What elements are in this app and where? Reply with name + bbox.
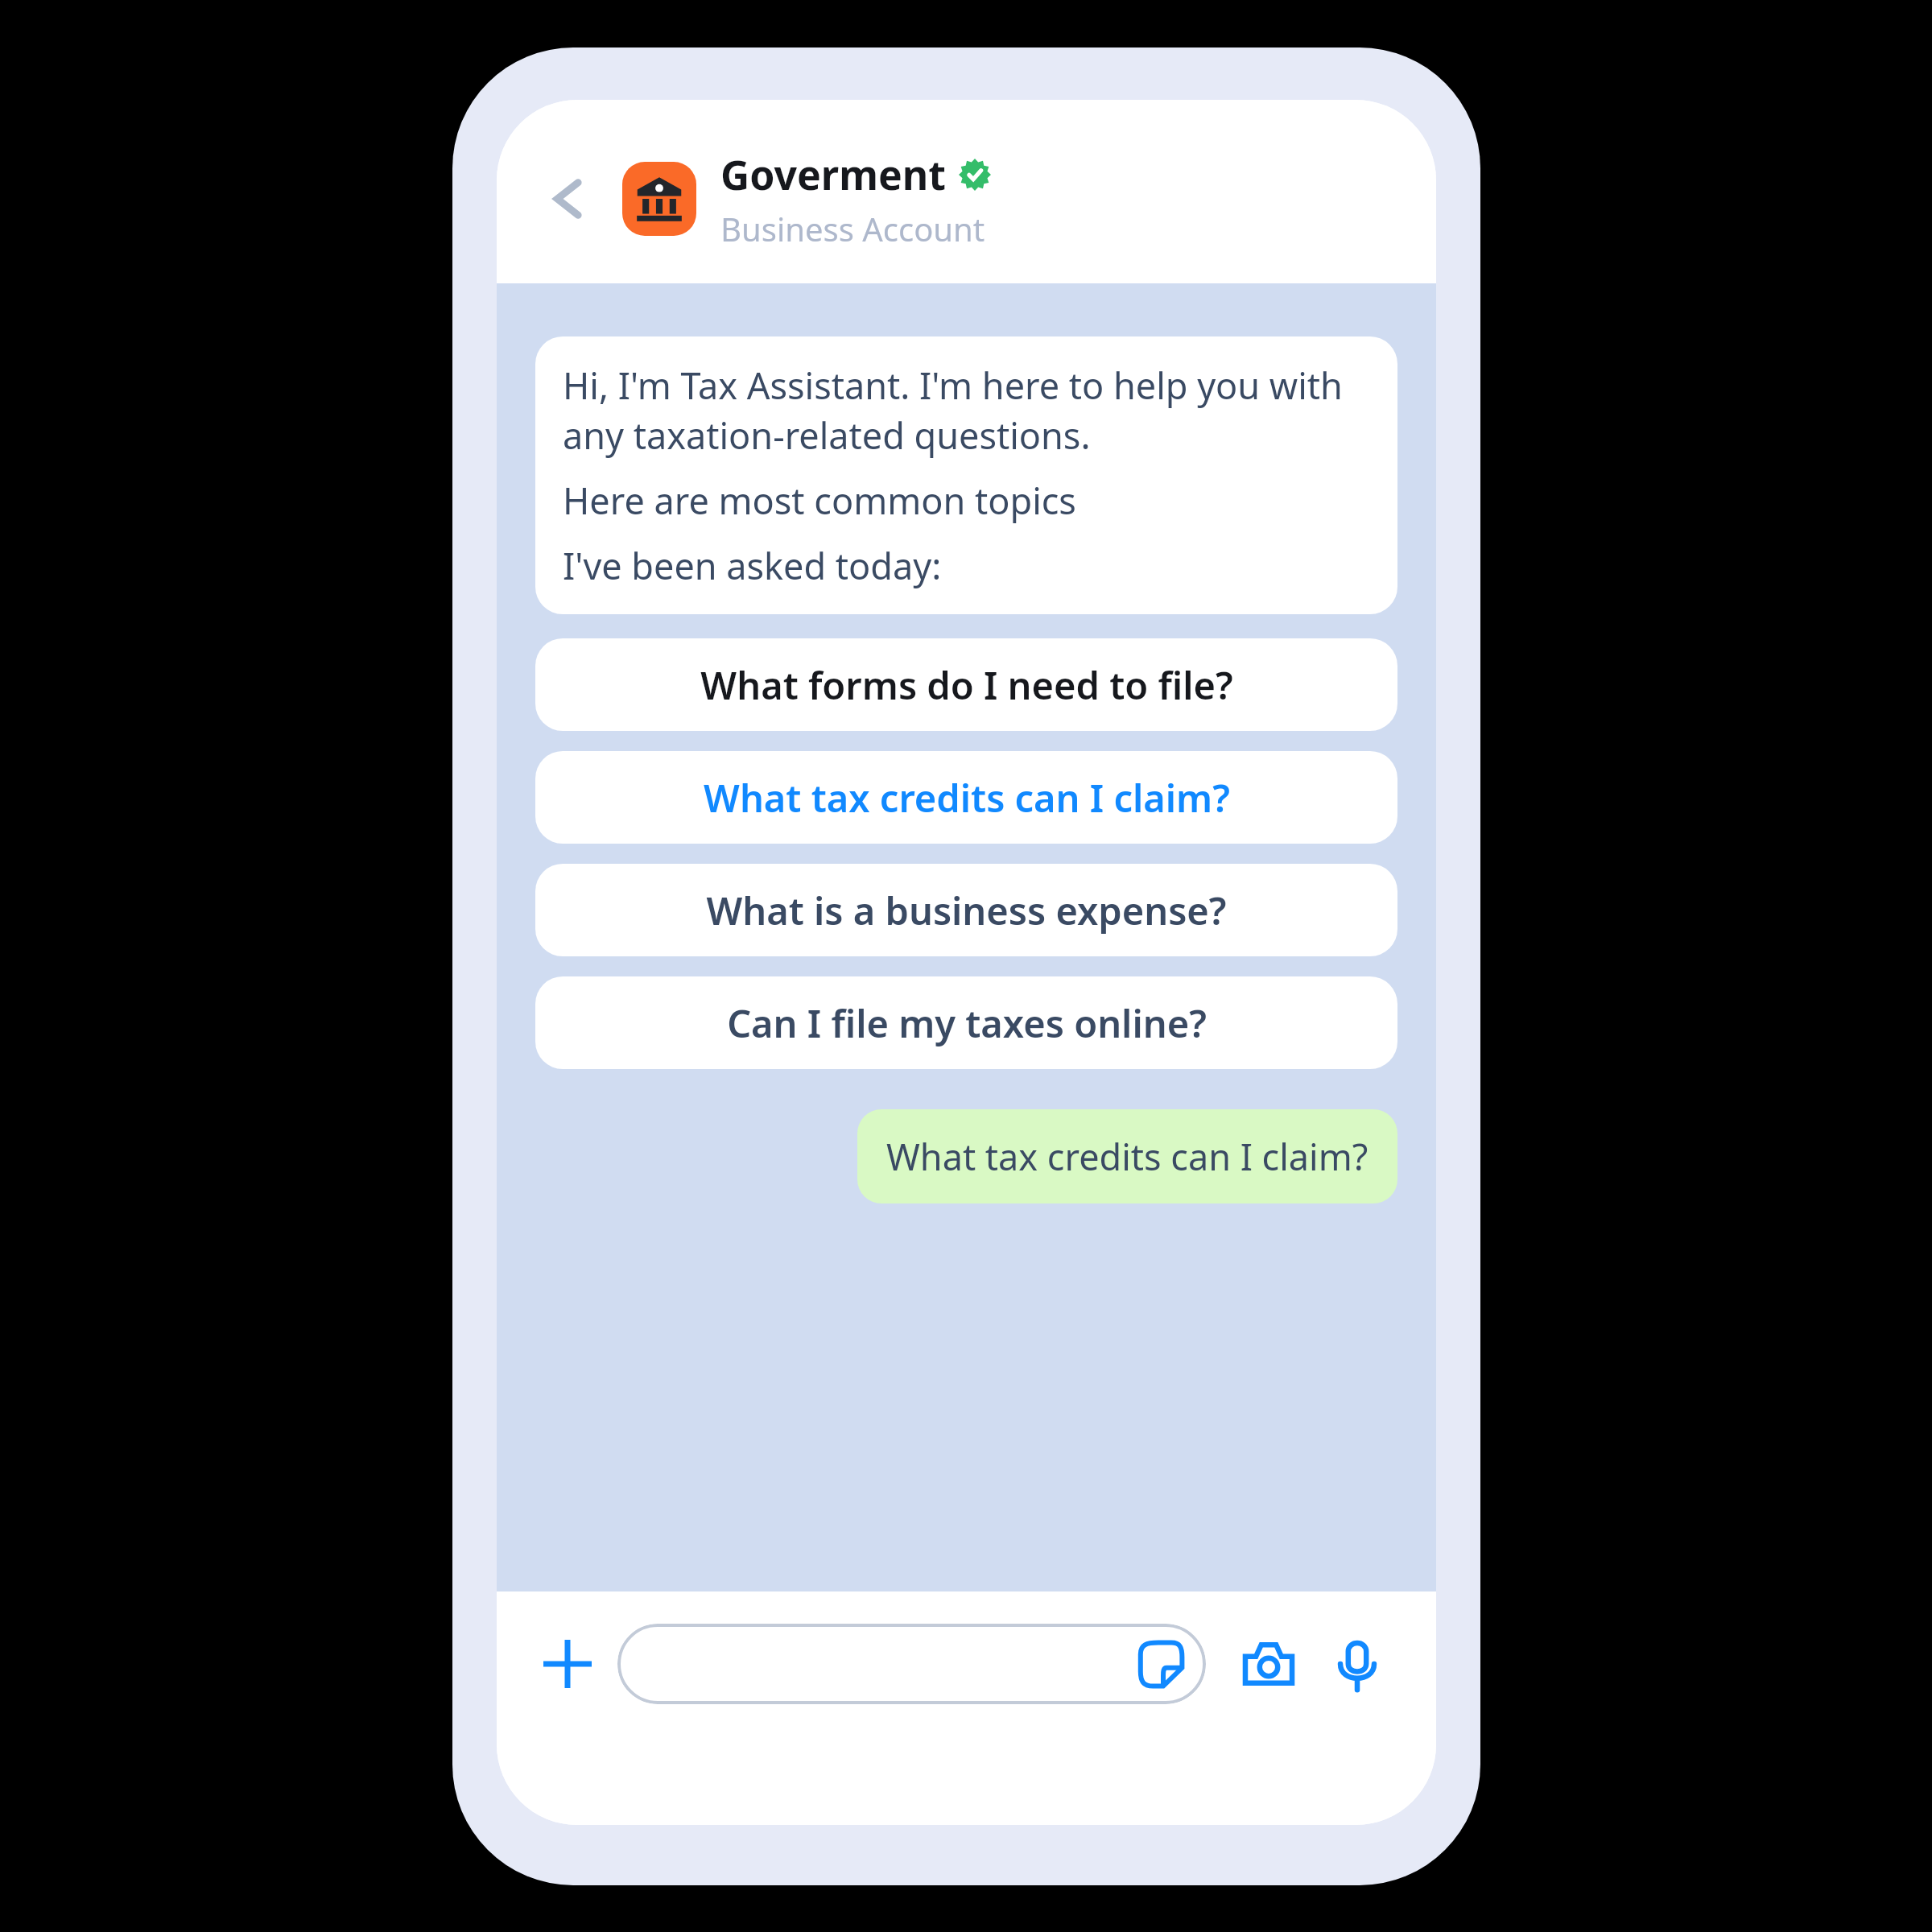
button[interactable]: Back	[535, 164, 605, 233]
staticText: What tax credits can I claim?	[886, 1132, 1368, 1181]
staticText: What is a business expense?	[706, 885, 1227, 936]
button[interactable]: Add attachment	[529, 1625, 606, 1703]
button[interactable]: Voice message	[1319, 1625, 1396, 1703]
other: Stickers	[1137, 1640, 1185, 1688]
button[interactable]: What tax credits can I claim?	[535, 751, 1397, 844]
button[interactable]: Stickers	[617, 1624, 1206, 1704]
staticText: What tax credits can I claim?	[704, 772, 1230, 824]
staticText: Goverment	[720, 147, 946, 202]
button[interactable]: Can I file my taxes online?	[535, 976, 1397, 1069]
staticText: Here are most common topics	[563, 476, 1076, 525]
button[interactable]: Camera	[1230, 1625, 1307, 1703]
staticText: Business Account	[720, 207, 985, 250]
staticText: What forms do I need to file?	[700, 659, 1233, 711]
button[interactable]: What is a business expense?	[535, 864, 1397, 956]
staticText: Can I file my taxes online?	[727, 997, 1207, 1049]
staticText: I've been asked today:	[563, 541, 942, 590]
staticText: Hi, I'm Tax Assistant. I'm here to help …	[563, 361, 1370, 460]
button[interactable]: What forms do I need to file?	[535, 638, 1397, 731]
button[interactable]: What tax credits can I claim?	[857, 1109, 1397, 1203]
